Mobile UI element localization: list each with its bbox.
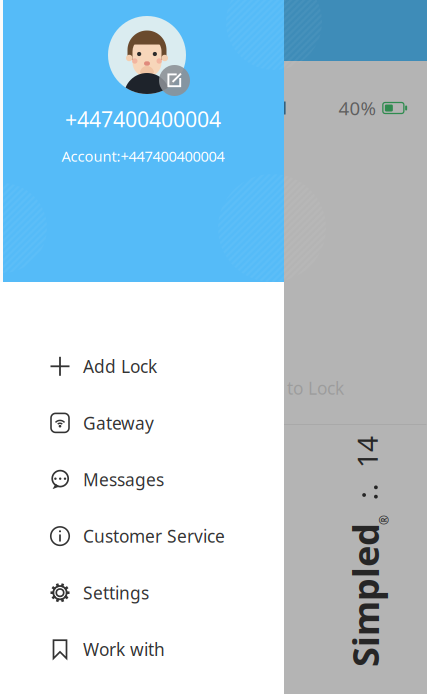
button[interactable]: Add Lock [0, 338, 284, 395]
staticText: Gateway [83, 411, 154, 434]
staticText: Work with [83, 638, 165, 661]
staticText: Settings [83, 581, 149, 604]
button[interactable]: Work with [0, 621, 284, 678]
staticText: Add Lock [83, 355, 157, 378]
staticText: Tap to add Locks to Lock [146, 376, 344, 399]
staticText: 40% [338, 96, 376, 120]
staticText: Customer Service [83, 525, 225, 548]
staticText: Account:+447400400004 [61, 146, 224, 166]
button[interactable]: Customer Service [0, 508, 284, 564]
staticText: 14 [351, 433, 383, 471]
staticText: ® [379, 512, 389, 528]
staticText: +447400400004 [65, 105, 221, 133]
button[interactable]: Settings [0, 564, 284, 621]
button[interactable]: Edit profile photo [107, 15, 187, 95]
staticText: Messages [83, 468, 164, 491]
button[interactable]: Gateway [0, 395, 284, 451]
staticText: Simpled [293, 571, 427, 619]
button[interactable]: Messages [0, 451, 284, 508]
